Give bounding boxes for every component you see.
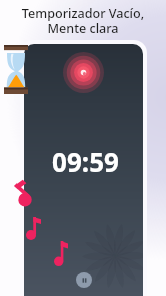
staticText: 09:59 — [26, 144, 143, 179]
staticText: Temporizador Vacío, Mente clara — [4, 5, 162, 37]
button[interactable]: Pause — [76, 272, 92, 288]
